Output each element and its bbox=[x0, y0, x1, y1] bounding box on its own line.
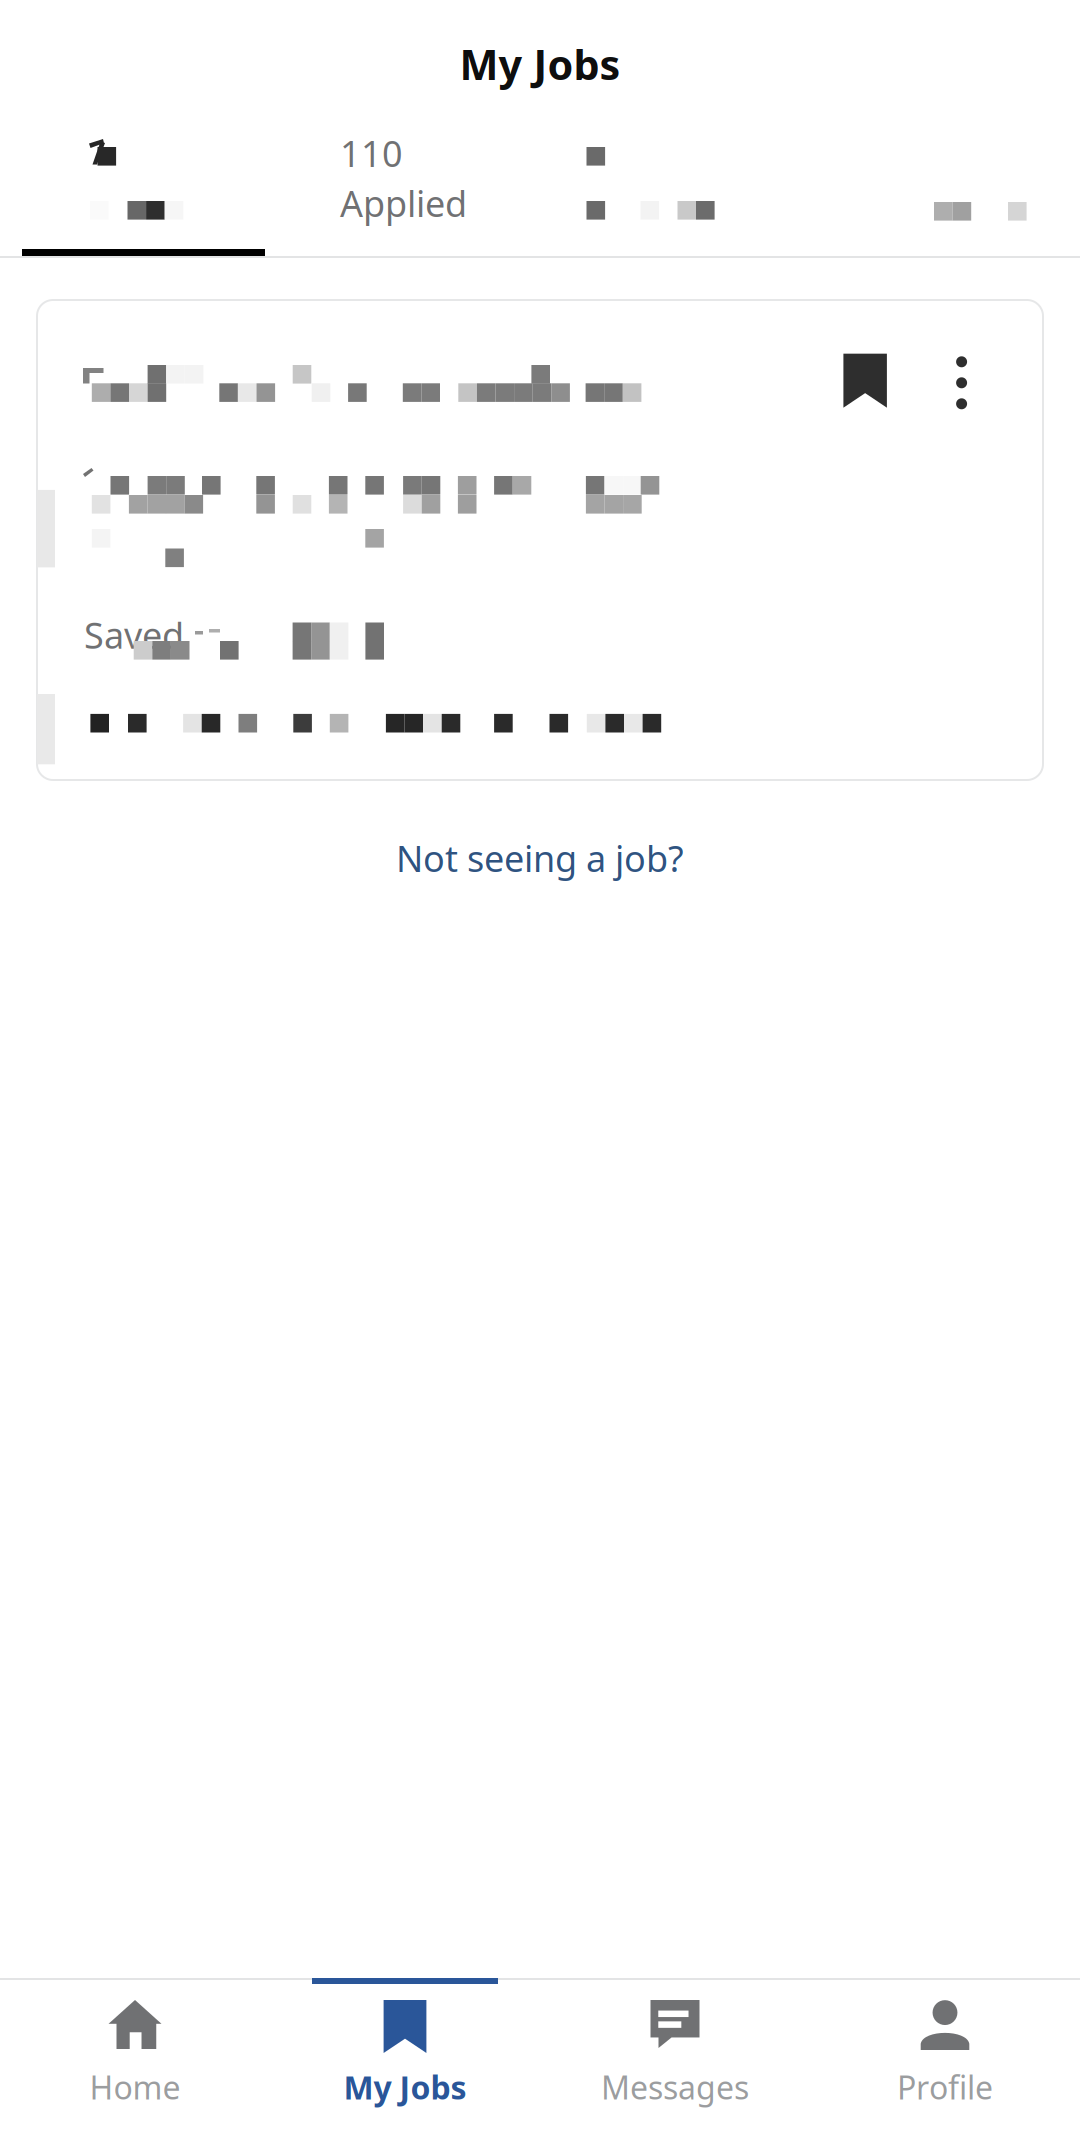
button[interactable]: Home bbox=[0, 1978, 270, 2151]
staticText: Not seeing a job? bbox=[396, 834, 684, 882]
staticText: My Jobs bbox=[343, 2066, 466, 2108]
button[interactable]: More options bbox=[932, 332, 991, 433]
button[interactable]: Messages bbox=[540, 1978, 810, 2151]
button[interactable] bbox=[570, 0, 840, 258]
staticText: Applied bbox=[340, 179, 467, 227]
staticText: Messages bbox=[601, 2066, 749, 2108]
staticText: Profile bbox=[897, 2066, 993, 2108]
button[interactable]: Remove from saved bbox=[823, 334, 907, 428]
button[interactable] bbox=[920, 0, 1080, 258]
staticText: 110 bbox=[340, 129, 403, 177]
button[interactable]: 110 bbox=[270, 0, 540, 258]
staticText: Home bbox=[89, 2066, 180, 2108]
staticText: Saved bbox=[84, 611, 184, 659]
button[interactable] bbox=[0, 0, 270, 258]
button[interactable]: My Jobs bbox=[270, 1978, 540, 2151]
staticText: My Jobs bbox=[459, 37, 620, 91]
button[interactable]: Not seeing a job? bbox=[0, 822, 1080, 894]
button[interactable]: Profile bbox=[810, 1978, 1080, 2151]
